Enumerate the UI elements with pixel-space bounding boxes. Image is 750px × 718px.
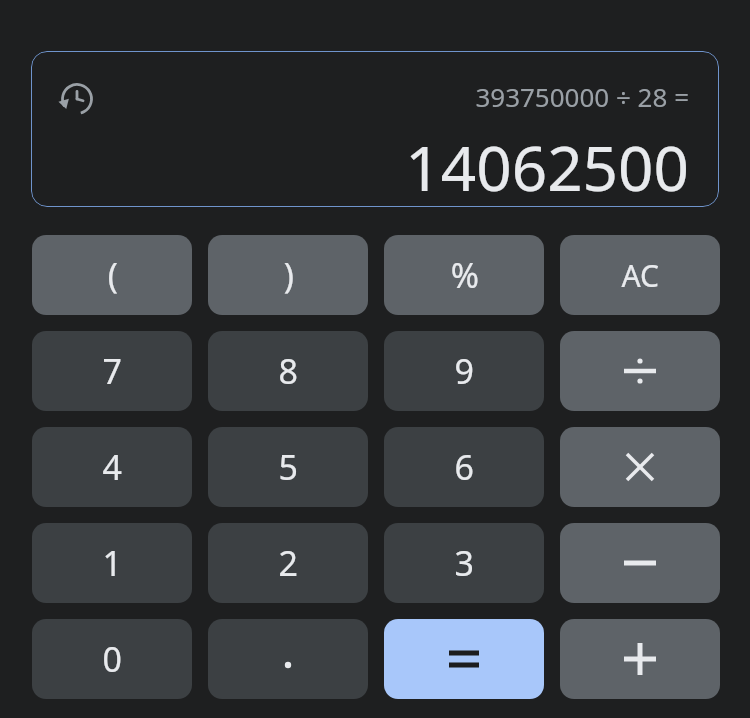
button[interactable]: History: [31, 51, 719, 207]
button[interactable]: ÷: [560, 331, 720, 411]
button[interactable]: 3: [384, 523, 544, 603]
button[interactable]: %: [384, 235, 544, 315]
button[interactable]: AC: [560, 235, 720, 315]
button[interactable]: ): [208, 235, 368, 315]
staticText: AC: [621, 255, 659, 296]
button[interactable]: =: [384, 619, 544, 699]
button[interactable]: −: [560, 523, 720, 603]
button[interactable]: 1: [32, 523, 192, 603]
staticText: ): [283, 252, 294, 298]
button[interactable]: +: [560, 619, 720, 699]
button[interactable]: ×: [560, 427, 720, 507]
staticText: 4: [102, 444, 122, 490]
staticText: (: [107, 252, 118, 298]
staticText: 3: [454, 540, 474, 586]
button[interactable]: 0: [32, 619, 192, 699]
staticText: 1: [102, 540, 122, 586]
button[interactable]: .: [208, 619, 368, 699]
staticText: 2: [278, 540, 298, 586]
button[interactable]: 8: [208, 331, 368, 411]
staticText: 6: [454, 444, 474, 490]
staticText: 9: [454, 348, 474, 394]
button[interactable]: 4: [32, 427, 192, 507]
staticText: 8: [278, 348, 298, 394]
staticText: %: [450, 252, 479, 298]
button[interactable]: History: [57, 79, 97, 119]
button[interactable]: 2: [208, 523, 368, 603]
button[interactable]: 6: [384, 427, 544, 507]
button[interactable]: 5: [208, 427, 368, 507]
staticText: 393750000 ÷ 28 =: [475, 79, 689, 114]
staticText: 0: [102, 636, 122, 682]
staticText: 14062500: [405, 125, 689, 207]
button[interactable]: (: [32, 235, 192, 315]
staticText: 7: [102, 348, 122, 394]
button[interactable]: 7: [32, 331, 192, 411]
staticText: 5: [278, 444, 298, 490]
button[interactable]: 9: [384, 331, 544, 411]
